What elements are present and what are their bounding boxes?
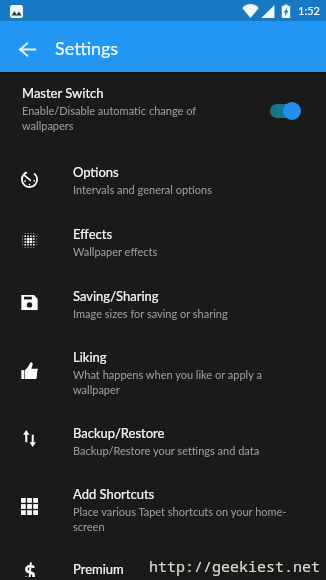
staticText: Enable/Disable automatic change of wallp…: [22, 104, 208, 133]
staticText: $: [24, 560, 36, 577]
button[interactable]: Liking: [0, 349, 326, 405]
button[interactable]: Master Switch: [0, 84, 326, 136]
button[interactable]: Backup/Restore: [0, 425, 326, 481]
button[interactable]: Effects: [0, 226, 326, 282]
staticText: 1:52: [298, 4, 320, 17]
staticText: Add Shortcuts: [73, 486, 155, 502]
staticText: Wallpaper effects: [73, 245, 158, 258]
staticText: Premium: [73, 561, 124, 577]
button[interactable]: Add Shortcuts: [0, 486, 326, 542]
staticText: Backup/Restore your settings and data: [73, 444, 260, 457]
staticText: Liking: [73, 349, 107, 365]
button[interactable]: Saving/Sharing: [0, 288, 326, 344]
staticText: Effects: [73, 226, 113, 242]
staticText: Options: [73, 164, 119, 180]
staticText: Master Switch: [22, 85, 104, 101]
staticText: What happens when you like or apply a wa…: [73, 368, 295, 397]
staticText: Saving/Sharing: [73, 288, 159, 304]
button[interactable]: $: [0, 561, 326, 580]
staticText: Settings: [55, 37, 119, 59]
staticText: http://geekiest.net: [149, 556, 321, 576]
button[interactable]: Back: [15, 37, 39, 61]
button[interactable]: Options: [0, 164, 326, 220]
staticText: Backup/Restore: [73, 425, 165, 441]
staticText: Image sizes for saving or sharing: [73, 307, 228, 320]
staticText: Intervals and general options: [73, 183, 212, 196]
staticText: Place various Tapet shortcuts on your ho…: [73, 505, 295, 534]
